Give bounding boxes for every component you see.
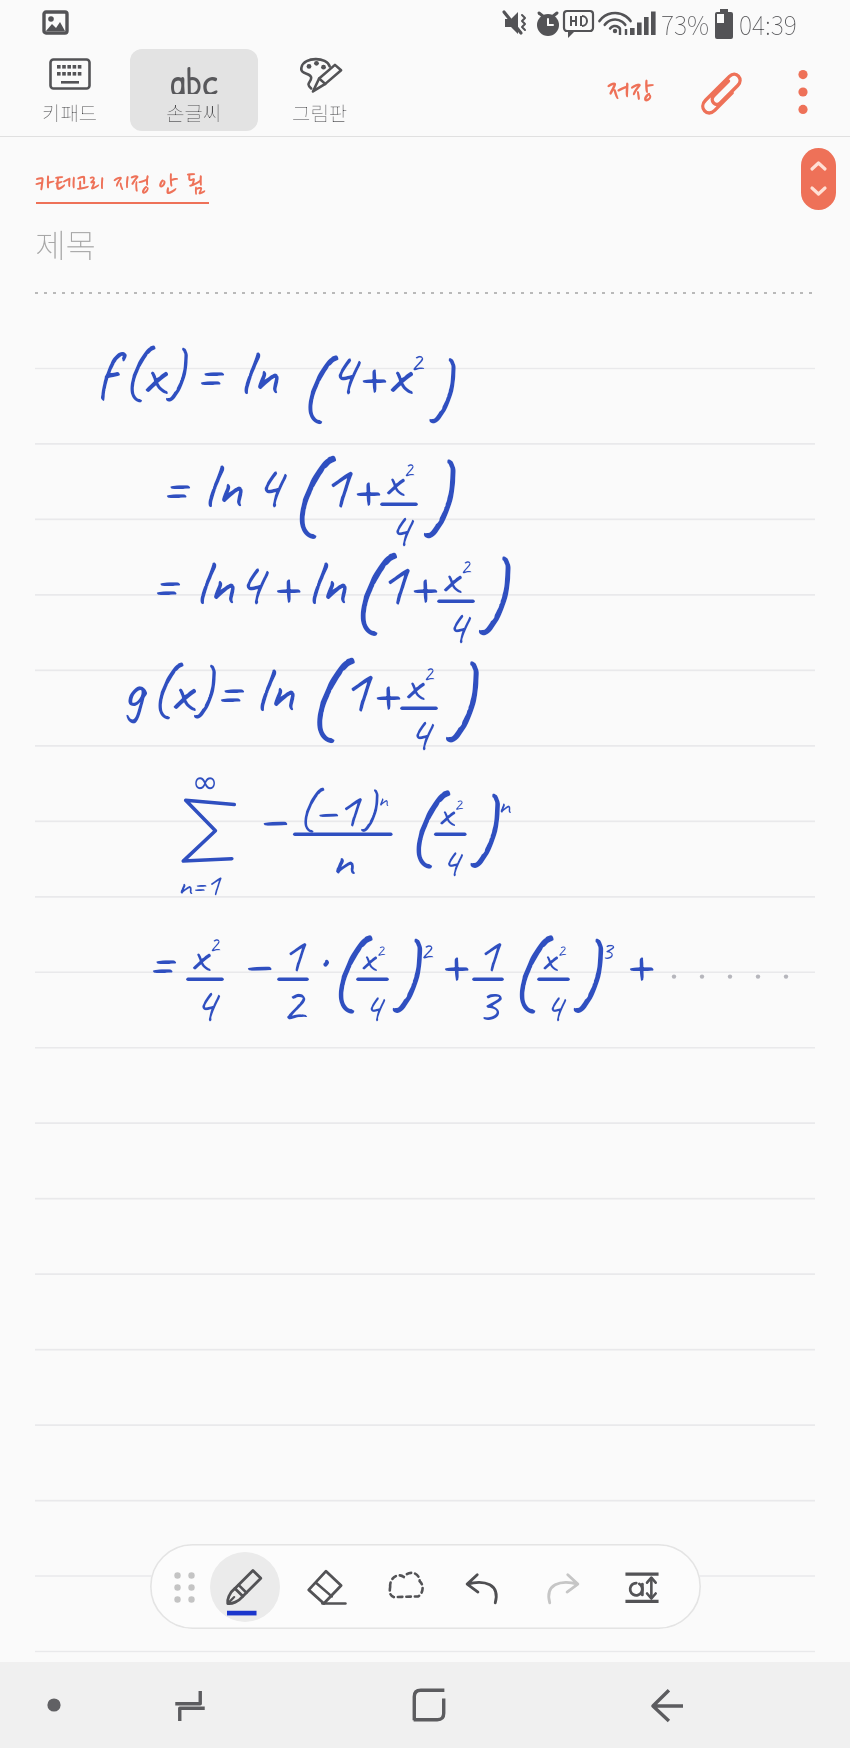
button[interactable]: Assistant [14,1662,94,1748]
button[interactable]: 저장 [580,46,680,137]
staticText: 키패드 [42,98,98,127]
button[interactable]: Home [389,1662,469,1748]
button[interactable]: More options [766,46,840,137]
button[interactable]: Back [627,1662,707,1748]
button[interactable]: Undo [448,1544,518,1629]
staticText: 그림판 [292,98,348,127]
button[interactable]: Pen [210,1544,280,1629]
button[interactable]: Recent apps [150,1662,230,1748]
button[interactable]: 카테고리 지정 안 됨 [30,158,214,206]
button[interactable]: abc [130,49,258,131]
button[interactable]: Lasso select [371,1544,441,1629]
button[interactable]: 키패드 [20,49,120,131]
staticText: 저장 [607,74,654,110]
staticText: 카테고리 지정 안 됨 [35,170,204,200]
button[interactable]: 제목 [30,214,850,266]
button[interactable]: Attach file [680,46,766,137]
staticText: 손글씨 [166,98,222,127]
button[interactable]: Text size [607,1544,677,1629]
button[interactable]: Redo [527,1544,597,1629]
staticText: 73% [661,6,710,42]
staticText: 제목 [35,220,96,268]
staticText: 04:39 [739,6,797,42]
button[interactable]: Scroll page [801,148,836,210]
button[interactable]: 그림판 [268,49,372,131]
button[interactable]: Move toolbar [156,1544,212,1629]
button[interactable]: Eraser [291,1544,361,1629]
staticText: abc [170,54,218,94]
